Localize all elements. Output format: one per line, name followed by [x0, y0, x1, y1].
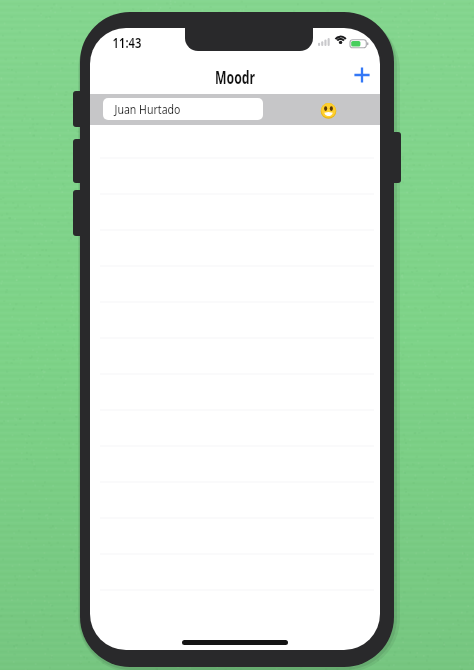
staticText: Juan Hurtado: [114, 101, 180, 117]
button[interactable]: [320, 102, 337, 119]
button[interactable]: [348, 61, 376, 89]
button[interactable]: Juan Hurtado: [90, 94, 380, 125]
staticText: Moodr: [131, 66, 339, 89]
staticText: 11:43: [113, 33, 141, 52]
button[interactable]: Juan Hurtado: [103, 98, 263, 120]
